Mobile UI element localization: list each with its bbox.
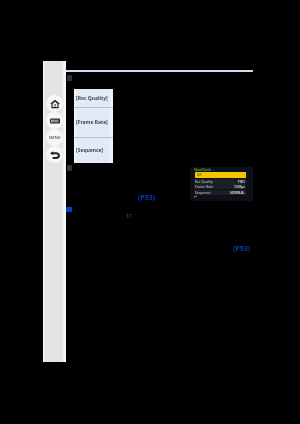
- staticText: (P93): [233, 244, 251, 254]
- button[interactable]: (P93): [138, 193, 156, 203]
- staticText: (P93): [138, 193, 156, 203]
- staticText: MENU: [49, 135, 61, 140]
- staticText: Sequence: [195, 190, 211, 195]
- staticText: Rec Quality: [195, 179, 213, 184]
- button[interactable]: [Sequence]: [74, 138, 113, 163]
- button[interactable]: [Frame Rate]: [74, 108, 113, 137]
- staticText: ON: [197, 173, 202, 177]
- button[interactable]: Back: [46, 146, 63, 163]
- staticText: [Sequence]: [76, 147, 104, 154]
- button[interactable]: (P93): [233, 244, 251, 254]
- staticText: Slow/Quick: [194, 168, 211, 172]
- button[interactable]: Display: [46, 112, 63, 129]
- button[interactable]: [Rec Quality]: [74, 89, 113, 107]
- button[interactable]: Home: [46, 95, 63, 112]
- staticText: FHD: [238, 179, 245, 184]
- staticText: [Frame Rate]: [76, 119, 108, 126]
- staticText: NORMAL: [230, 190, 245, 195]
- staticText: tr: [126, 211, 133, 221]
- staticText: [Rec Quality]: [76, 95, 108, 102]
- staticText: 120fps: [234, 184, 245, 189]
- staticText: Frame Rate: [195, 184, 214, 189]
- staticText: ↩: [194, 194, 198, 199]
- button[interactable]: Menu: [46, 129, 63, 146]
